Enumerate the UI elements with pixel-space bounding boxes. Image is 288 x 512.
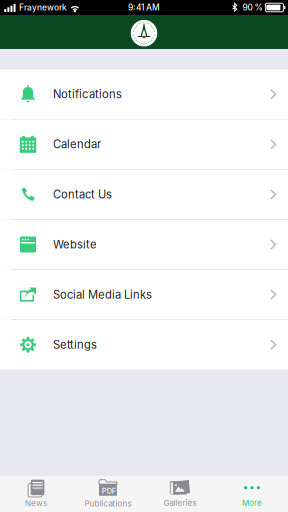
staticText: Website [53, 238, 97, 251]
button[interactable]: More [216, 475, 288, 512]
staticText: 9:41 AM [128, 2, 160, 13]
button[interactable]: Contact Us [0, 170, 288, 219]
staticText: Settings [53, 338, 97, 351]
staticText: 90 % [242, 2, 262, 13]
button[interactable]: Calendar [0, 120, 288, 169]
button[interactable]: Notifications [0, 69, 288, 119]
button[interactable]: Website [0, 220, 288, 269]
button[interactable]: Home [130, 17, 157, 47]
staticText: More [242, 498, 262, 508]
staticText: News [25, 499, 47, 508]
staticText: Calendar [53, 137, 101, 151]
button[interactable]: Social Media Links [0, 270, 288, 319]
staticText: Fraynework [19, 2, 67, 13]
staticText: Social Media Links [53, 288, 152, 301]
button[interactable]: News [0, 475, 72, 512]
button[interactable]: PDF [72, 475, 144, 512]
staticText: PDF [102, 486, 116, 495]
staticText: Contact Us [53, 188, 112, 201]
staticText: Publications [84, 499, 131, 508]
staticText: Notifications [53, 87, 122, 101]
button[interactable]: Settings [0, 320, 288, 369]
staticText: Galleries [163, 498, 196, 508]
button[interactable]: Galleries [144, 475, 216, 512]
